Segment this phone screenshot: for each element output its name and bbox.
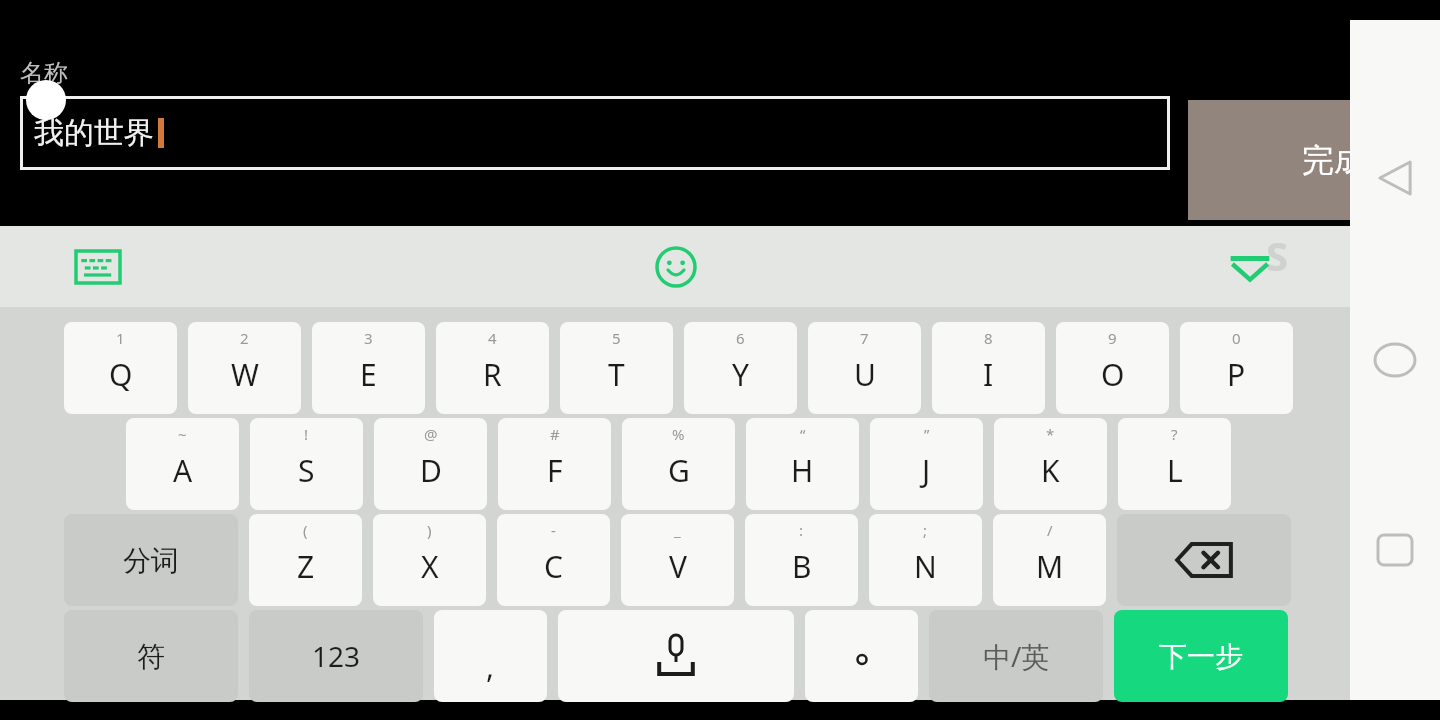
- button[interactable]: /: [993, 514, 1106, 606]
- staticText: W: [231, 354, 259, 395]
- button[interactable]: !: [250, 418, 363, 510]
- button[interactable]: 9: [1056, 322, 1169, 414]
- staticText: 名称: [20, 58, 68, 88]
- staticText: O: [1101, 354, 1125, 395]
- button[interactable]: 4: [436, 322, 549, 414]
- staticText: 1: [116, 328, 125, 348]
- staticText: X: [421, 546, 439, 587]
- staticText: 5: [612, 328, 621, 348]
- button[interactable]: 6: [684, 322, 797, 414]
- other: Backspace: [1117, 514, 1291, 606]
- staticText: P: [1227, 354, 1246, 395]
- staticText: E: [360, 354, 377, 395]
- button[interactable]: 分词: [64, 514, 238, 606]
- button[interactable]: 8: [932, 322, 1045, 414]
- staticText: 6: [736, 328, 745, 348]
- button[interactable]: 1: [64, 322, 177, 414]
- button[interactable]: 我的世界: [20, 96, 1170, 170]
- staticText: R: [483, 354, 502, 395]
- button[interactable]: #: [498, 418, 611, 510]
- staticText: U: [854, 354, 876, 395]
- staticText: S: [298, 450, 315, 491]
- staticText: B: [792, 546, 812, 587]
- button[interactable]: 中/英: [929, 610, 1103, 702]
- button[interactable]: @: [374, 418, 487, 510]
- button[interactable]: 3: [312, 322, 425, 414]
- button[interactable]: Space / Voice input: [558, 610, 794, 702]
- button[interactable]: _: [621, 514, 734, 606]
- staticText: F: [547, 450, 563, 491]
- staticText: K: [1041, 450, 1060, 491]
- staticText: T: [608, 354, 625, 395]
- staticText: 3: [364, 328, 373, 348]
- button[interactable]: Recents: [1367, 522, 1423, 578]
- button[interactable]: (: [249, 514, 362, 606]
- staticText: N: [914, 546, 937, 587]
- staticText: “: [800, 424, 806, 444]
- staticText: 我的世界: [34, 114, 154, 152]
- button[interactable]: ~: [126, 418, 239, 510]
- button[interactable]: Emoji: [649, 240, 703, 294]
- staticText: 8: [984, 328, 993, 348]
- staticText: 0: [1232, 328, 1241, 348]
- staticText: Y: [732, 354, 749, 395]
- staticText: ,: [486, 646, 495, 687]
- staticText: G: [668, 450, 690, 491]
- staticText: D: [420, 450, 442, 491]
- button[interactable]: Hide keyboard: [1222, 246, 1278, 288]
- staticText: _: [674, 520, 681, 540]
- button[interactable]: *: [994, 418, 1107, 510]
- button[interactable]: 7: [808, 322, 921, 414]
- button[interactable]: 符: [64, 610, 238, 702]
- button[interactable]: Home: [1367, 332, 1423, 388]
- staticText: 下一步: [1159, 639, 1243, 674]
- button[interactable]: 5: [560, 322, 673, 414]
- staticText: #: [550, 424, 560, 444]
- button[interactable]: ,: [434, 610, 547, 702]
- button[interactable]: 下一步: [1114, 610, 1288, 702]
- button[interactable]: ;: [869, 514, 982, 606]
- staticText: ?: [1171, 424, 1178, 444]
- staticText: 符: [137, 639, 165, 674]
- staticText: M: [1036, 546, 1064, 587]
- button[interactable]: 123: [249, 610, 423, 702]
- staticText: /: [1047, 520, 1053, 540]
- staticText: H: [791, 450, 814, 491]
- staticText: !: [304, 424, 309, 444]
- button[interactable]: [805, 610, 918, 702]
- button[interactable]: “: [746, 418, 859, 510]
- staticText: 2: [240, 328, 249, 348]
- button[interactable]: 0: [1180, 322, 1293, 414]
- staticText: *: [1046, 424, 1055, 444]
- button[interactable]: Back: [1367, 150, 1423, 206]
- button[interactable]: ?: [1118, 418, 1231, 510]
- button[interactable]: :: [745, 514, 858, 606]
- other: Space / Voice input: [558, 610, 794, 702]
- staticText: L: [1167, 450, 1183, 491]
- button[interactable]: -: [497, 514, 610, 606]
- staticText: ~: [178, 424, 187, 444]
- staticText: 123: [312, 637, 361, 675]
- button[interactable]: 2: [188, 322, 301, 414]
- staticText: 中/英: [983, 637, 1050, 675]
- staticText: :: [799, 520, 804, 540]
- staticText: C: [544, 546, 563, 587]
- staticText: ): [427, 520, 432, 540]
- staticText: -: [551, 520, 556, 540]
- staticText: Z: [297, 546, 315, 587]
- staticText: 9: [1108, 328, 1117, 348]
- staticText: I: [983, 354, 994, 395]
- button[interactable]: Backspace: [1117, 514, 1291, 606]
- staticText: J: [922, 450, 931, 491]
- button[interactable]: ): [373, 514, 486, 606]
- button[interactable]: 完成: [1188, 100, 1350, 220]
- staticText: @: [424, 424, 438, 444]
- button[interactable]: ”: [870, 418, 983, 510]
- staticText: 完成: [1302, 140, 1366, 180]
- staticText: ;: [923, 520, 928, 540]
- button[interactable]: %: [622, 418, 735, 510]
- staticText: S: [1266, 228, 1289, 282]
- staticText: 7: [860, 328, 869, 348]
- staticText: 分词: [123, 543, 179, 578]
- button[interactable]: Keyboard layout: [70, 246, 126, 288]
